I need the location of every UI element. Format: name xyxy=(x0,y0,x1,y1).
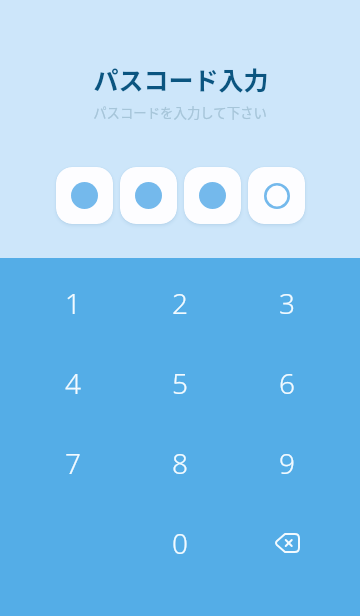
button[interactable]: 7 xyxy=(20,423,126,503)
button[interactable]: Backspace xyxy=(233,503,340,583)
button[interactable]: 1 xyxy=(20,263,126,343)
button[interactable]: 6 xyxy=(233,343,340,423)
other: Backspace xyxy=(274,533,300,553)
button[interactable]: 3 xyxy=(233,263,340,343)
staticText: 9 xyxy=(279,444,295,482)
button[interactable]: 4 xyxy=(20,343,126,423)
staticText: 7 xyxy=(65,444,81,482)
staticText: 6 xyxy=(279,364,295,402)
staticText: 3 xyxy=(279,284,295,322)
staticText: 5 xyxy=(172,364,188,402)
button[interactable]: 5 xyxy=(126,343,233,423)
button[interactable]: 2 xyxy=(126,263,233,343)
staticText: 2 xyxy=(172,284,188,322)
staticText: 8 xyxy=(172,444,188,482)
staticText: 0 xyxy=(172,524,188,562)
staticText: パスコード入力 xyxy=(93,61,269,97)
button[interactable]: 9 xyxy=(233,423,340,503)
staticText: 1 xyxy=(65,284,81,322)
staticText: 4 xyxy=(65,364,81,402)
staticText: パスコードを入力して下さい xyxy=(93,102,267,121)
button[interactable]: 0 xyxy=(126,503,233,583)
button[interactable]: 8 xyxy=(126,423,233,503)
